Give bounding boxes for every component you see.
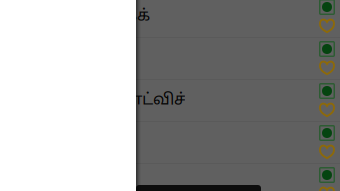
button[interactable]: Add to favourites — [319, 18, 335, 32]
button[interactable]: Add to favourites — [319, 186, 335, 191]
button[interactable]: Add to favourites — [319, 60, 335, 74]
staticText: ஸ்ட்ராபெரி கேக் — [16, 7, 150, 26]
button[interactable]: Add to favourites — [319, 144, 335, 158]
button[interactable]: பன்னீர் ரோல் — [0, 164, 340, 191]
button[interactable]: வெஜ் பர்கர் — [0, 38, 340, 80]
staticText: சாக்லேட் சாண்ட்விச் — [16, 91, 186, 110]
button[interactable]: ஸ்ட்ராபெரி கேக் — [0, 0, 340, 38]
button[interactable]: Vegetarian — [319, 41, 334, 56]
button[interactable]: Vegetarian — [319, 167, 334, 182]
button[interactable]: Add to favourites — [319, 102, 335, 116]
button[interactable]: Vegetarian — [319, 0, 334, 14]
button[interactable]: ரவா தோசை — [0, 122, 340, 164]
button[interactable]: Vegetarian — [319, 125, 334, 140]
button[interactable]: சாக்லேட் சாண்ட்விச் — [0, 80, 340, 122]
button[interactable]: Vegetarian — [319, 83, 334, 98]
